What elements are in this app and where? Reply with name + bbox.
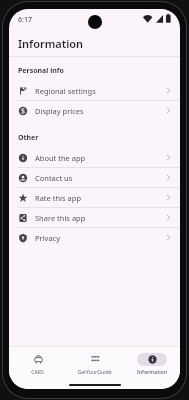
staticText: Display prices <box>35 106 165 116</box>
button[interactable]: CARS <box>9 347 66 380</box>
staticText: Regional settings <box>35 86 165 96</box>
staticText: Privacy <box>35 233 165 243</box>
button[interactable]: GetYourGuide <box>66 347 123 380</box>
staticText: CARS <box>31 368 44 375</box>
staticText: Information <box>137 368 167 375</box>
staticText: Contact us <box>35 173 165 183</box>
staticText: Share this app <box>35 213 165 223</box>
staticText: Rate this app <box>35 193 165 203</box>
staticText: About the app <box>35 153 165 163</box>
button[interactable]: Regional settings <box>9 81 180 100</box>
staticText: GetYourGuide <box>77 368 112 375</box>
button[interactable]: Share this app <box>9 208 180 227</box>
button[interactable]: Privacy <box>9 228 180 247</box>
button[interactable]: Display prices <box>9 101 180 120</box>
staticText: 6:17 <box>18 15 32 25</box>
button[interactable]: About the app <box>9 148 180 167</box>
button[interactable]: Rate this app <box>9 188 180 207</box>
staticText: Other <box>18 133 39 143</box>
staticText: Information <box>18 36 84 51</box>
button[interactable]: Contact us <box>9 168 180 187</box>
button[interactable]: Information <box>123 347 180 380</box>
staticText: Personal info <box>18 66 64 76</box>
